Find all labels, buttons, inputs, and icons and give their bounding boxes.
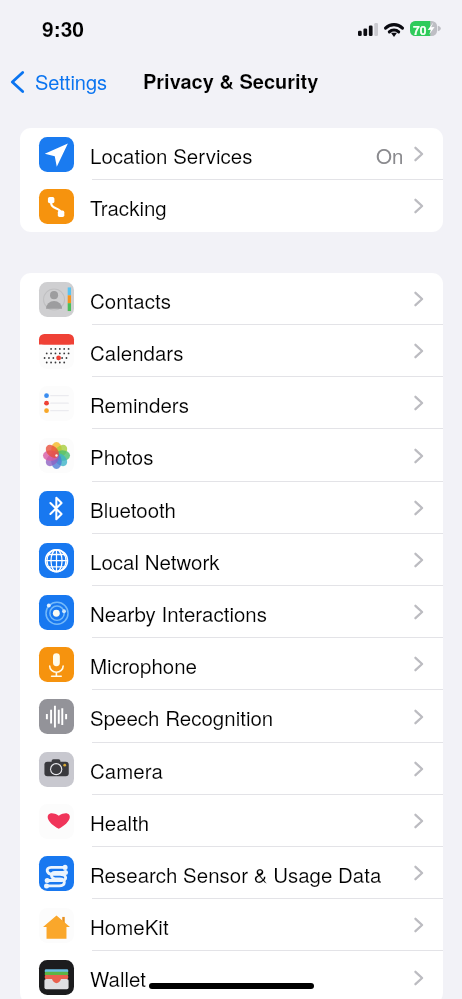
button[interactable]: Wallet xyxy=(20,951,443,999)
staticText: Camera xyxy=(90,755,163,784)
staticText: Nearby Interactions xyxy=(90,598,268,627)
staticText: Local Network xyxy=(90,546,220,575)
staticText: HomeKit xyxy=(90,911,169,940)
button[interactable]: Bluetooth xyxy=(20,482,443,534)
button[interactable]: Photos xyxy=(20,429,443,482)
button[interactable]: Location Services xyxy=(20,128,443,180)
button[interactable]: Calendars xyxy=(20,325,443,377)
staticText: On xyxy=(376,140,404,169)
button[interactable]: Camera xyxy=(20,743,443,795)
button[interactable]: Research Sensor & Usage Data xyxy=(20,847,443,899)
staticText: Photos xyxy=(90,441,154,470)
button[interactable]: Nearby Interactions xyxy=(20,586,443,638)
button[interactable]: Speech Recognition xyxy=(20,690,443,743)
staticText: Contacts xyxy=(90,285,171,314)
other: Wi-Fi xyxy=(384,21,404,36)
staticText: Location Services xyxy=(90,140,253,169)
button[interactable]: Tracking xyxy=(20,180,443,232)
staticText: Tracking xyxy=(90,192,167,221)
button[interactable]: Microphone xyxy=(20,638,443,690)
staticText: Speech Recognition xyxy=(90,702,274,731)
staticText: Health xyxy=(90,807,150,836)
button[interactable]: Local Network xyxy=(20,534,443,586)
staticText: Research Sensor & Usage Data xyxy=(90,859,382,888)
button[interactable]: Contacts xyxy=(20,273,443,325)
staticText: Privacy & Security xyxy=(143,66,319,95)
button[interactable]: HomeKit xyxy=(20,899,443,951)
staticText: Microphone xyxy=(90,650,197,679)
other: Battery 70 percent charging xyxy=(410,21,439,36)
staticText: Wallet xyxy=(90,963,146,992)
staticText: 70 xyxy=(413,21,427,36)
button[interactable]: Back to Settings xyxy=(0,64,118,100)
staticText: Bluetooth xyxy=(90,494,176,523)
button[interactable]: Health xyxy=(20,795,443,847)
other: Cellular signal xyxy=(358,23,378,36)
staticText: Settings xyxy=(35,67,108,96)
staticText: Reminders xyxy=(90,389,189,418)
button[interactable]: Reminders xyxy=(20,377,443,429)
staticText: 9:30 xyxy=(42,13,85,43)
staticText: Calendars xyxy=(90,337,184,366)
